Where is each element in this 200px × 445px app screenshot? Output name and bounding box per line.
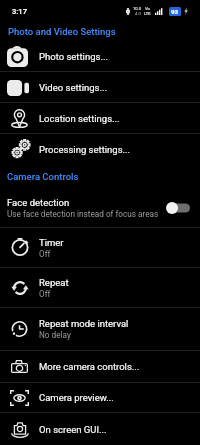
staticText: Processing settings... [39, 144, 131, 155]
staticText: Photo and Video Settings [8, 26, 116, 37]
staticText: LTE [144, 11, 151, 16]
button[interactable]: Repeat mode interval [0, 308, 200, 350]
button[interactable]: More camera controls... [0, 351, 200, 382]
staticText: Repeat [39, 277, 69, 288]
staticText: Repeat mode interval [39, 318, 129, 329]
staticText: Location settings... [39, 113, 120, 124]
staticText: 3:17 [12, 7, 27, 16]
staticText: Photo settings... [39, 51, 108, 62]
button[interactable]: Camera preview... [0, 383, 200, 412]
button[interactable]: Photo settings... [0, 41, 200, 71]
button[interactable]: Repeat [0, 268, 200, 307]
staticText: On screen GUI... [39, 424, 107, 435]
staticText: 93 [171, 8, 179, 15]
staticText: Off [39, 289, 51, 299]
staticText: Camera preview... [39, 392, 114, 403]
staticText: No delay [39, 330, 71, 340]
staticText: 10.0 [133, 6, 142, 11]
button[interactable]: On screen GUI... [0, 413, 200, 445]
button[interactable]: Face detection [0, 188, 200, 227]
button[interactable]: Location settings... [0, 103, 200, 133]
button[interactable]: Timer [0, 228, 200, 267]
staticText: Vo [145, 6, 150, 11]
staticText: Use face detection instead of focus area… [7, 209, 159, 219]
staticText: Timer [39, 237, 64, 248]
staticText: 4.0 [135, 11, 141, 16]
staticText: Video settings... [39, 82, 107, 93]
staticText: Face detection [7, 197, 70, 208]
button[interactable]: Video settings... [0, 72, 200, 102]
staticText: Camera Controls [7, 171, 79, 182]
staticText: Off [39, 249, 51, 259]
button[interactable]: Processing settings... [0, 134, 200, 164]
staticText: More camera controls... [39, 361, 140, 372]
